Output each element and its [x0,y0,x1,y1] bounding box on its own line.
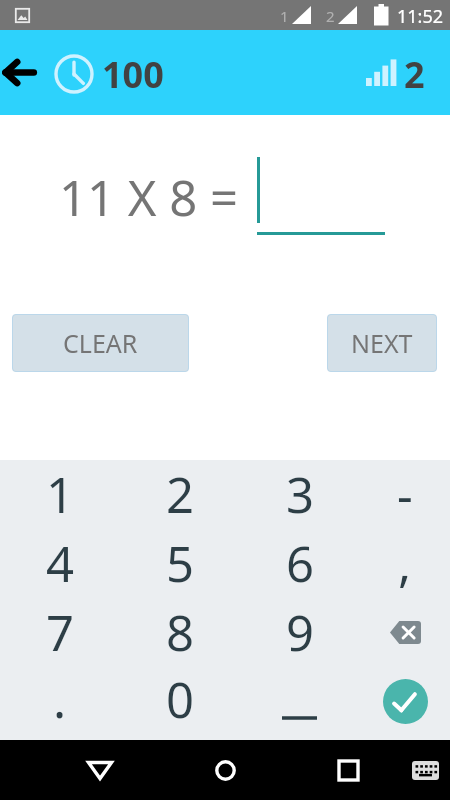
staticText: 8 [166,599,195,666]
button[interactable]: Back [68,740,132,800]
button[interactable]: 7 [0,598,120,667]
button[interactable]: . [0,663,120,736]
button[interactable]: Keyboard [401,746,449,794]
button[interactable]: NEXT [327,314,437,372]
button[interactable]: Backspace [360,598,450,667]
staticText: 2 [326,6,335,26]
staticText: 100 [102,50,164,99]
button[interactable]: 6 [240,529,360,598]
staticText: - [397,461,413,528]
button[interactable]: Back [0,48,42,98]
staticText: 0 [166,666,195,733]
staticText: . [53,666,67,733]
button[interactable]: 0 [120,663,240,736]
button[interactable]: 9 [240,598,360,667]
button[interactable]: 1 [0,460,120,529]
button[interactable]: 100 [54,47,164,99]
staticText: 1 [46,461,75,528]
button[interactable]: 5 [120,529,240,598]
staticText: 11 X 8 = [59,164,239,231]
button[interactable]: 8 [120,598,240,667]
staticText: 1 [280,6,289,26]
button[interactable]: 4 [0,529,120,598]
button[interactable]: Enter [360,663,450,736]
staticText: 4 [46,530,75,597]
staticText: , [398,530,412,597]
button[interactable]: 2 [120,460,240,529]
staticText: 9 [286,599,315,666]
staticText: CLEAR [63,326,138,360]
other: Backspace [385,613,425,653]
button[interactable]: , [360,529,450,598]
staticText: 5 [166,530,195,597]
button[interactable]: Recents [316,740,380,800]
button[interactable]: CLEAR [12,314,189,372]
staticText: 11:52 [397,4,444,29]
button[interactable]: Underscore [240,663,360,736]
staticText: 7 [46,599,75,666]
other: Enter [383,679,428,724]
staticText: 2 [404,50,425,96]
button[interactable]: Home [193,740,257,800]
staticText: 3 [286,461,315,528]
button[interactable]: Level 2 [362,47,425,93]
button[interactable]: 3 [240,460,360,529]
button[interactable]: - [360,460,450,529]
staticText: NEXT [351,326,413,360]
staticText: 6 [286,530,315,597]
staticText: 2 [166,461,195,528]
